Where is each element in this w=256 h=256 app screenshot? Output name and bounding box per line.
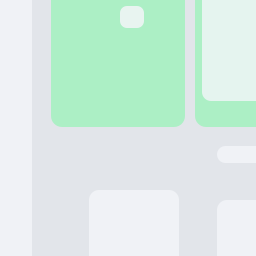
button[interactable]: Featured card — [51, 0, 185, 127]
button[interactable]: Second card — [195, 0, 256, 127]
